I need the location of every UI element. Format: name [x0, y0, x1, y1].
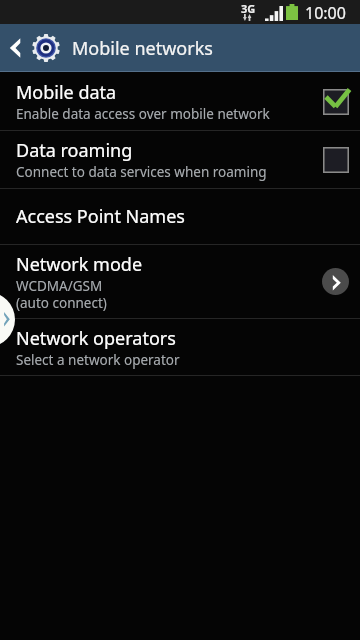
- button[interactable]: Navigate up: [4, 36, 28, 60]
- button[interactable]: Access Point Names: [0, 189, 360, 244]
- button[interactable]: Network mode options: [322, 268, 349, 295]
- button[interactable]: Open navigation drawer: [0, 292, 15, 347]
- button[interactable]: Checked: [322, 88, 349, 115]
- staticText: Network operators: [16, 326, 176, 351]
- staticText: Mobile networks: [72, 36, 213, 61]
- button[interactable]: Unchecked: [322, 146, 349, 173]
- button[interactable]: Mobile data: [0, 72, 360, 130]
- staticText: Connect to data services when roaming: [16, 163, 267, 181]
- staticText: 3G: [241, 1, 256, 16]
- button[interactable]: Data roaming: [0, 131, 360, 188]
- staticText: Access Point Names: [16, 204, 185, 229]
- staticText: WCDMA/GSM (auto connect): [16, 277, 107, 312]
- staticText: Data roaming: [16, 138, 133, 163]
- button[interactable]: Network operators: [0, 319, 360, 375]
- button[interactable]: Network mode: [0, 245, 360, 318]
- staticText: Mobile data: [16, 80, 117, 105]
- staticText: Enable data access over mobile network: [16, 105, 270, 123]
- staticText: 10:00: [305, 2, 346, 24]
- staticText: Select a network operator: [16, 351, 180, 369]
- staticText: Network mode: [16, 252, 143, 277]
